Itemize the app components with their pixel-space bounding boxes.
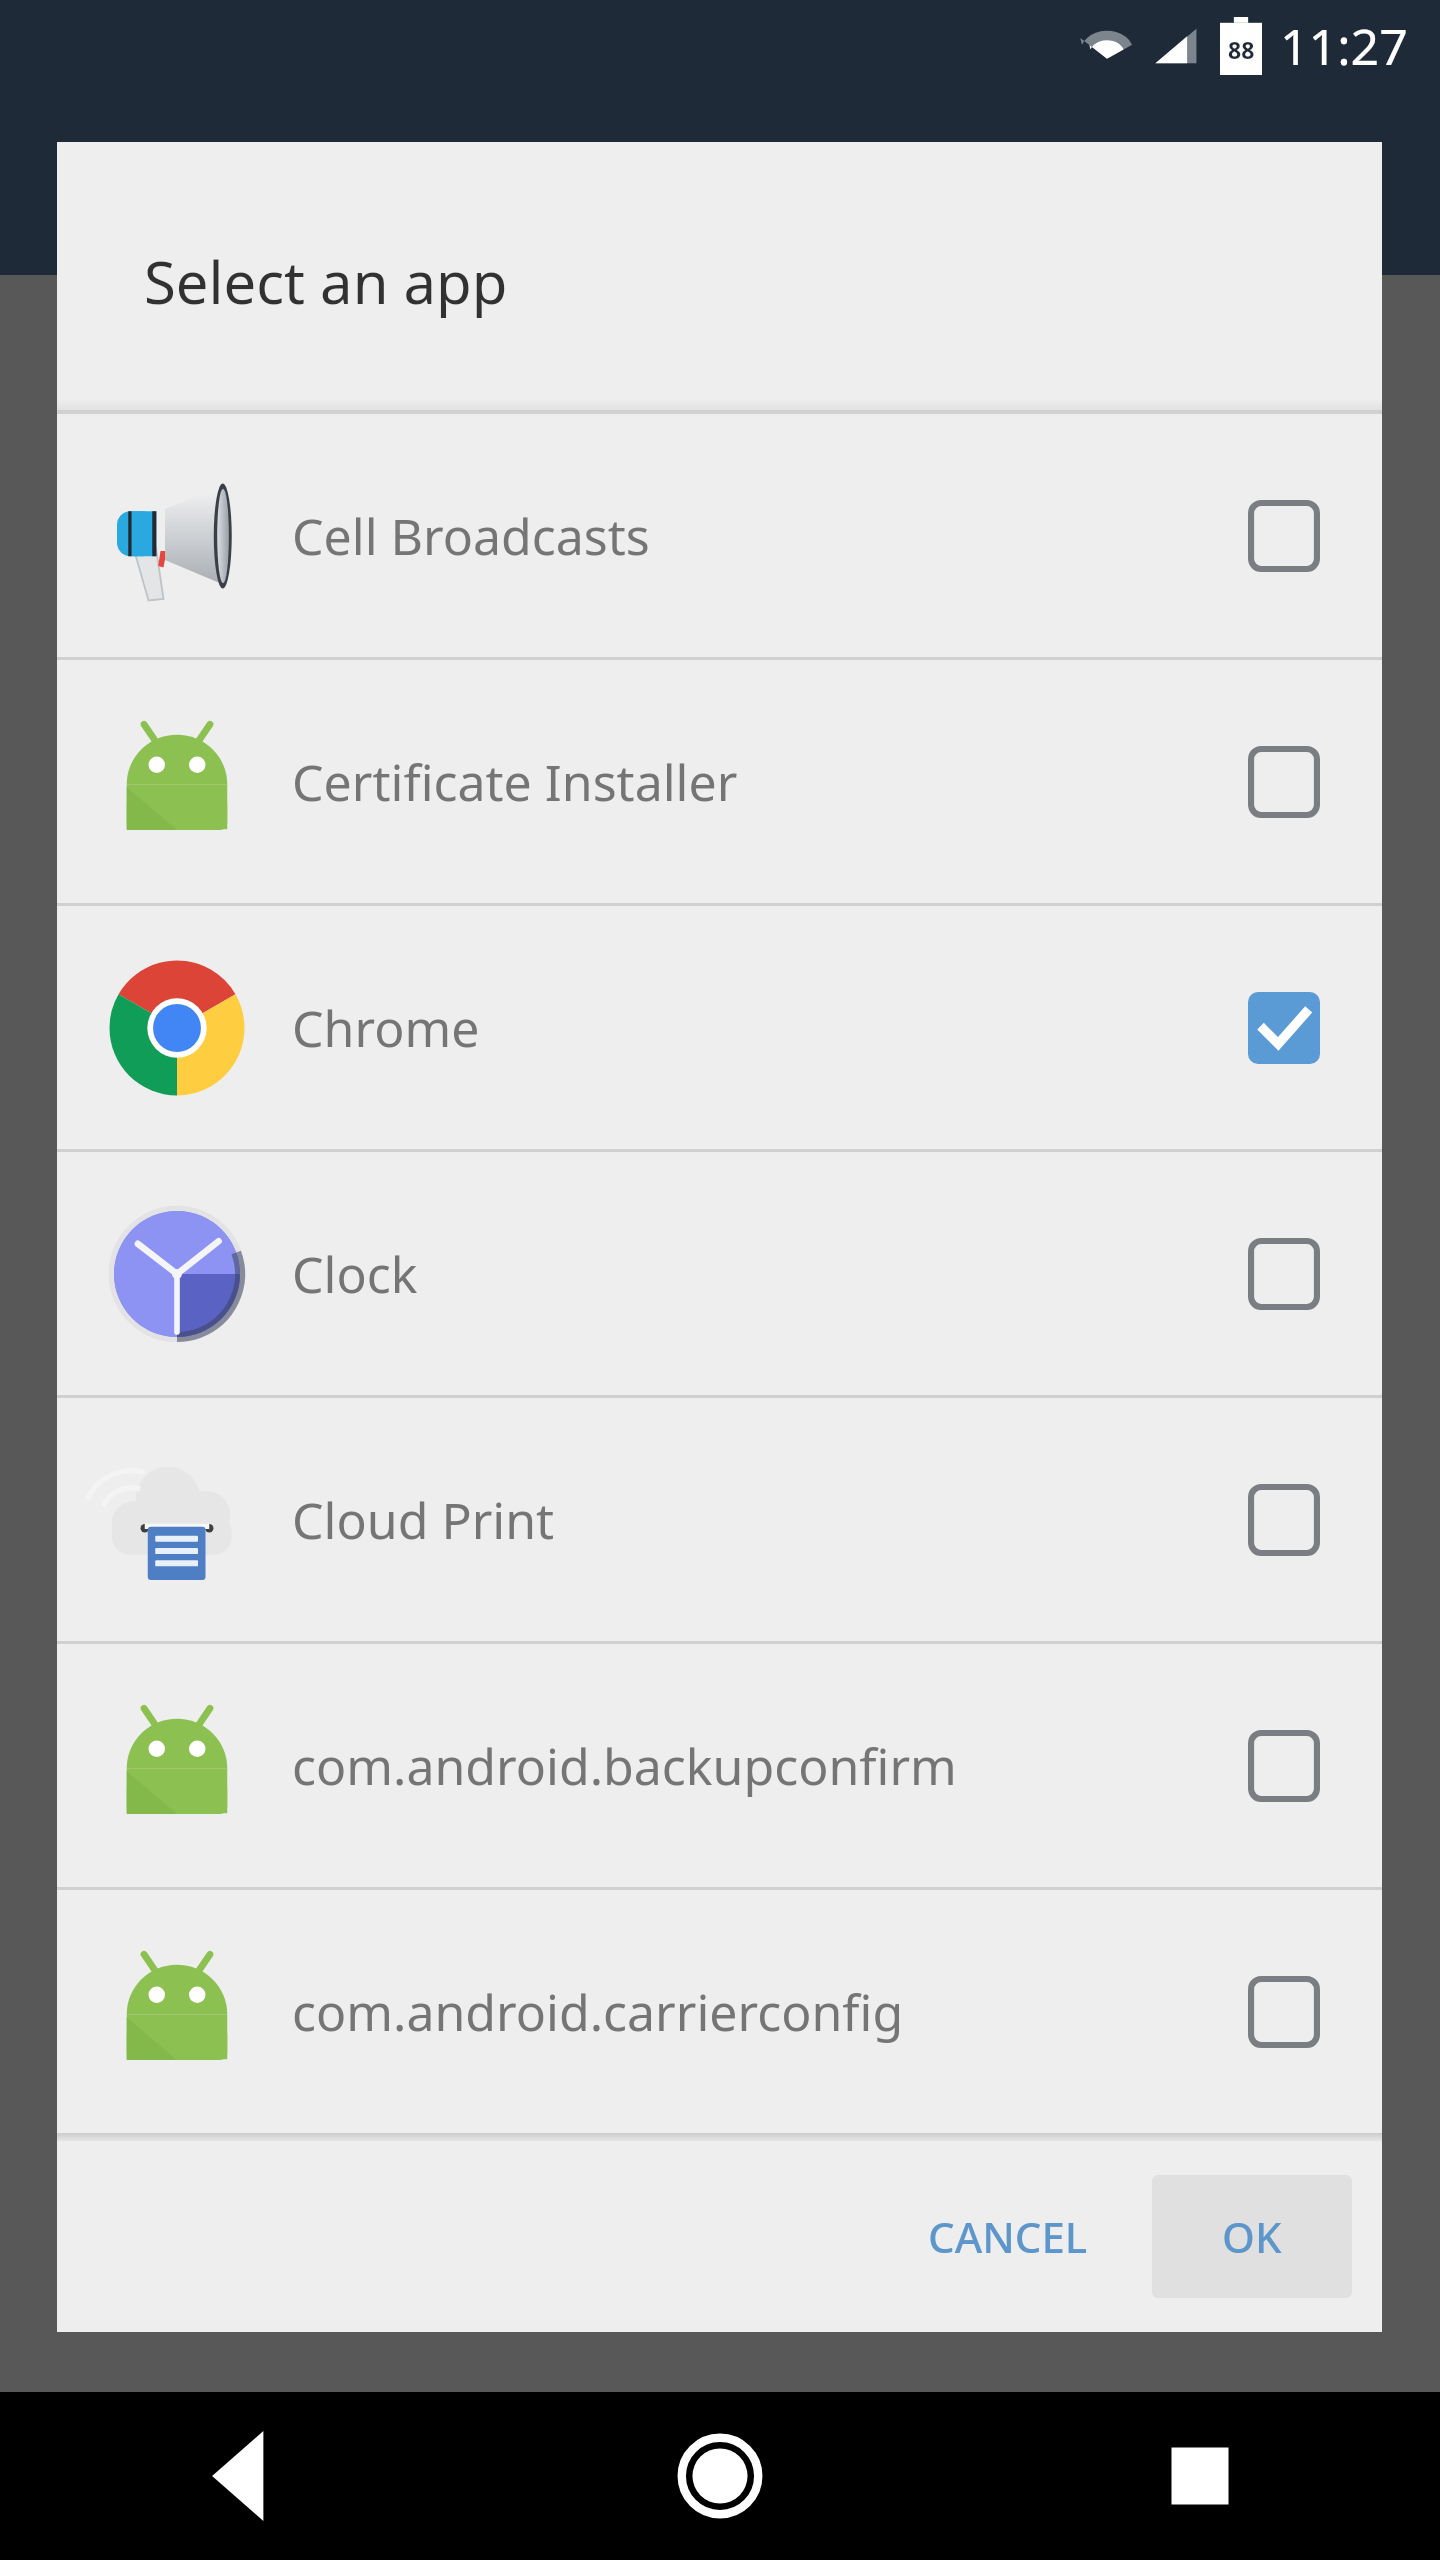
button[interactable]: Not selected xyxy=(1224,1214,1344,1334)
staticText: CANCEL xyxy=(928,2208,1088,2265)
staticText: Certificate Installer xyxy=(292,748,1224,816)
staticText: 88 xyxy=(1228,34,1255,65)
button[interactable]: Not selected xyxy=(1224,1460,1344,1580)
staticText: Chrome xyxy=(292,994,1224,1062)
button[interactable]: Chrome xyxy=(57,906,1382,1149)
button[interactable]: Recent apps xyxy=(1125,2401,1275,2551)
staticText: 11:27 xyxy=(1280,12,1408,80)
button[interactable]: Not selected xyxy=(1224,1706,1344,1826)
button[interactable]: Cell Broadcasts xyxy=(57,414,1382,657)
button[interactable]: Not selected xyxy=(1224,476,1344,596)
button[interactable]: com.android.carrierconfig xyxy=(57,1890,1382,2133)
staticText: Clock xyxy=(292,1240,1224,1308)
staticText: Cloud Print xyxy=(292,1486,1224,1554)
button[interactable]: Selected xyxy=(1224,968,1344,1088)
staticText: com.android.carrierconfig xyxy=(292,1978,1224,2046)
staticText: com.android.backupconfirm xyxy=(292,1732,1224,1800)
staticText: Cell Broadcasts xyxy=(292,502,1224,570)
button[interactable]: Home xyxy=(645,2401,795,2551)
button[interactable]: com.android.backupconfirm xyxy=(57,1644,1382,1887)
button[interactable]: OK xyxy=(1152,2175,1352,2298)
staticText: Select an app xyxy=(144,242,508,321)
button[interactable]: Not selected xyxy=(1224,722,1344,842)
staticText: OK xyxy=(1222,2208,1282,2265)
button[interactable]: Clock xyxy=(57,1152,1382,1395)
button[interactable]: Certificate Installer xyxy=(57,660,1382,903)
button[interactable]: Back xyxy=(165,2401,315,2551)
button[interactable]: CANCEL xyxy=(892,2180,1124,2293)
button[interactable]: Cloud Print xyxy=(57,1398,1382,1641)
button[interactable]: Not selected xyxy=(1224,1952,1344,2072)
